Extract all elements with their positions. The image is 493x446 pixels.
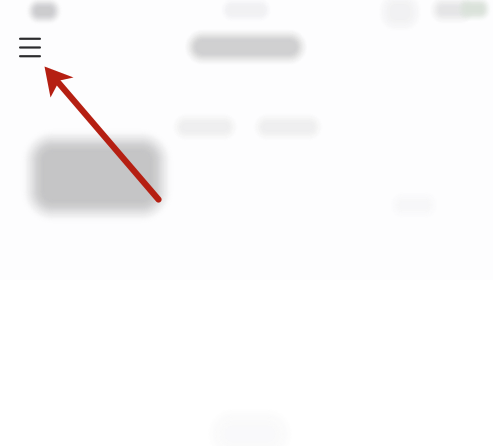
button[interactable]: Menu xyxy=(11,29,49,65)
